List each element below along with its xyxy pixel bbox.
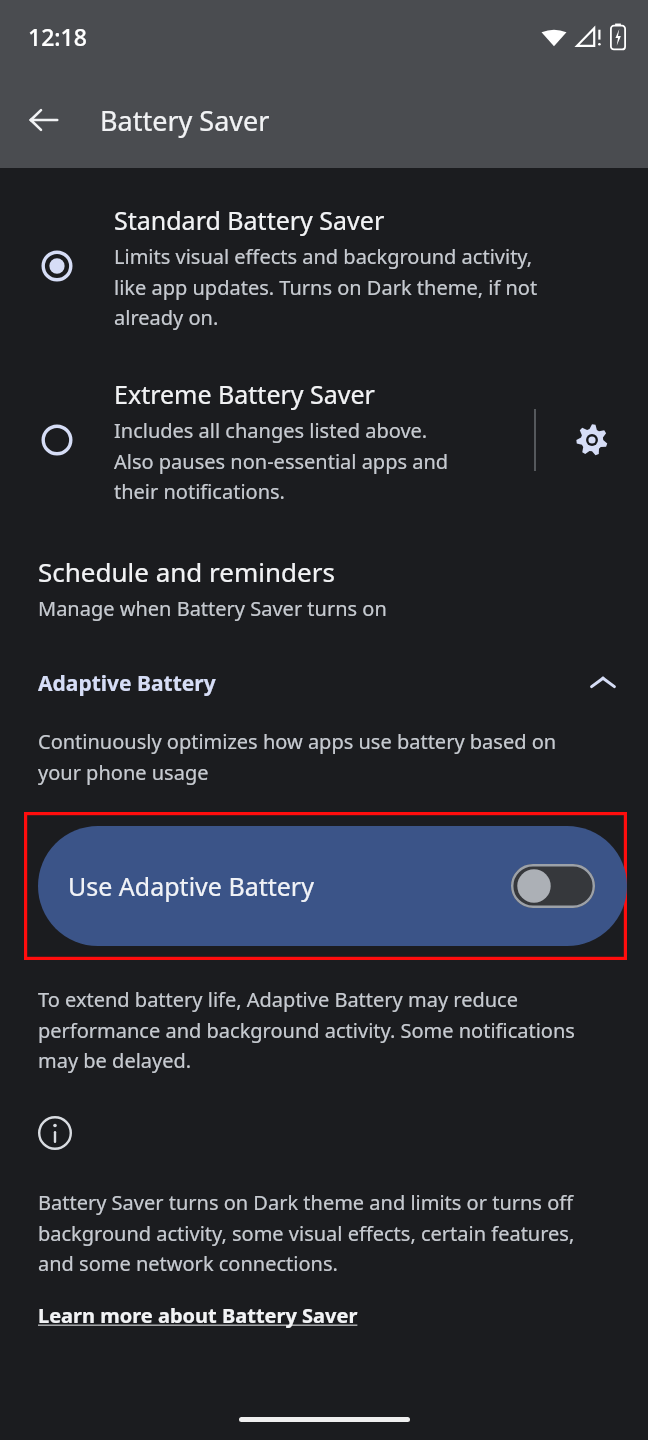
staticText: Standard Battery Saver	[114, 203, 385, 237]
staticText: Extreme Battery Saver	[114, 377, 375, 411]
button[interactable]: Adaptive Battery	[0, 668, 648, 698]
staticText: Limits visual effects and background act…	[114, 243, 538, 330]
button[interactable]: Back	[16, 92, 72, 148]
button[interactable]: Extreme Battery Saver settings	[536, 390, 648, 490]
button[interactable]: Use Adaptive Battery toggle	[511, 864, 595, 908]
staticText: Use Adaptive Battery	[68, 869, 314, 903]
button[interactable]: Schedule and reminders	[0, 554, 648, 622]
staticText: 12:18	[28, 21, 87, 52]
button[interactable]: Learn more about Battery Saver	[38, 1302, 358, 1329]
staticText: To extend battery life, Adaptive Battery…	[38, 986, 575, 1073]
staticText: Manage when Battery Saver turns on	[38, 595, 387, 622]
button[interactable]: Extreme Battery Saver	[0, 370, 534, 510]
button[interactable]: Information	[38, 1115, 74, 1151]
staticText: Includes all changes listed above. Also …	[114, 417, 449, 504]
staticText: Battery Saver	[100, 102, 270, 139]
staticText: Schedule and reminders	[38, 554, 335, 589]
staticText: Learn more about Battery Saver	[38, 1302, 358, 1329]
button[interactable]: Use Adaptive Battery	[38, 826, 627, 946]
staticText: Continuously optimizes how apps use batt…	[38, 728, 557, 785]
staticText: Adaptive Battery	[38, 669, 216, 698]
button[interactable]: Standard Battery Saver	[0, 196, 648, 336]
staticText: Battery Saver turns on Dark theme and li…	[38, 1189, 575, 1276]
